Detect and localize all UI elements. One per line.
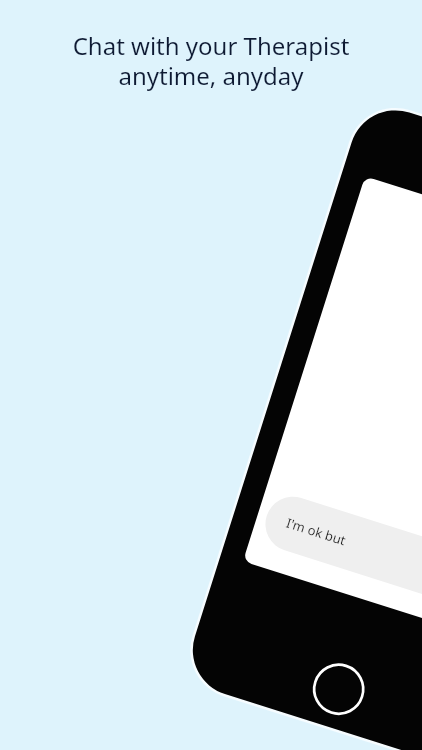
button[interactable]: Chat with your Therapist anytime, anyday [0, 0, 422, 750]
